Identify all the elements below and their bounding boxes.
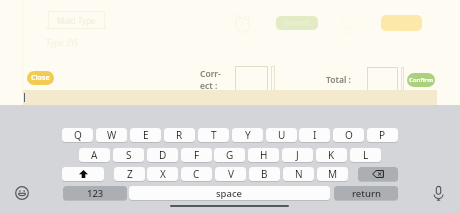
button[interactable]: Emoji keyboard [12,186,31,200]
button[interactable] [367,67,398,95]
staticText: ect : [200,80,218,92]
staticText: return [352,187,381,200]
button[interactable]: L [350,148,381,162]
button[interactable]: N [283,167,314,181]
staticText: A [91,148,98,162]
staticText: Maid Type [57,15,96,26]
staticText: Total : [326,74,351,86]
staticText: V [228,167,234,181]
button[interactable]: I [299,128,330,142]
staticText: M [328,167,338,181]
staticText: U [278,128,286,142]
staticText: Close [31,73,50,83]
button[interactable]: S [113,148,144,162]
staticText: C [193,167,200,181]
button[interactable]: K [316,148,347,162]
button[interactable]: Q [62,128,93,142]
staticText: F [194,148,200,162]
staticText: Z [127,167,133,181]
staticText: O [345,128,353,142]
staticText: Wrong [390,18,414,28]
button[interactable]: B [249,167,280,181]
staticText: 123 [87,187,104,200]
button[interactable]: Y [232,128,263,142]
button[interactable]: R [164,128,195,142]
button[interactable]: V [215,167,246,181]
staticText: X [160,167,166,181]
staticText: Q [74,128,82,142]
staticText: D [159,148,167,162]
button[interactable]: Close [27,71,54,85]
staticText: Confirm [409,76,434,84]
staticText: T [211,128,217,142]
staticText: Type :(Y) [46,37,78,48]
button[interactable]: D [147,148,178,162]
button[interactable]: Backspace [358,167,398,181]
button[interactable]: 123 [63,186,127,200]
button[interactable]: Shift [62,167,104,181]
button[interactable]: return [334,186,398,200]
staticText: W [107,128,117,142]
staticText: P [379,128,386,142]
button[interactable]: P [367,128,398,142]
button[interactable]: U [266,128,297,142]
button[interactable]: C [181,167,212,181]
button[interactable]: space [129,186,330,200]
staticText: H [260,148,268,162]
button[interactable]: J [282,148,313,162]
button[interactable]: M [317,167,348,181]
button[interactable]: A [79,148,110,162]
staticText: S [126,148,132,162]
button[interactable]: X [147,167,178,181]
button[interactable]: Z [114,167,145,181]
staticText: Y [245,128,251,142]
staticText: R [176,128,183,142]
button[interactable]: E [130,128,161,142]
button[interactable]: Confirm [407,73,435,87]
staticText: G [226,148,234,162]
button[interactable]: Voice input [431,186,446,201]
button[interactable]: W [96,128,127,142]
staticText: L [363,148,369,162]
staticText: Corr- [200,68,221,80]
button[interactable]: Wrong [381,15,422,31]
staticText: B [261,167,268,181]
button[interactable]: O [333,128,364,142]
staticText: Correct [284,18,310,28]
button[interactable]: Maid Type [48,11,105,29]
staticText: E [143,128,149,142]
staticText: N [295,167,303,181]
button[interactable]: H [248,148,279,162]
button[interactable]: G [214,148,245,162]
staticText: J [296,148,299,162]
button[interactable]: F [181,148,212,162]
button[interactable] [235,66,268,95]
button[interactable]: Correct [276,16,318,30]
staticText: K [328,148,335,162]
staticText: space [216,187,243,200]
button[interactable]: T [198,128,229,142]
staticText: I [313,128,317,142]
